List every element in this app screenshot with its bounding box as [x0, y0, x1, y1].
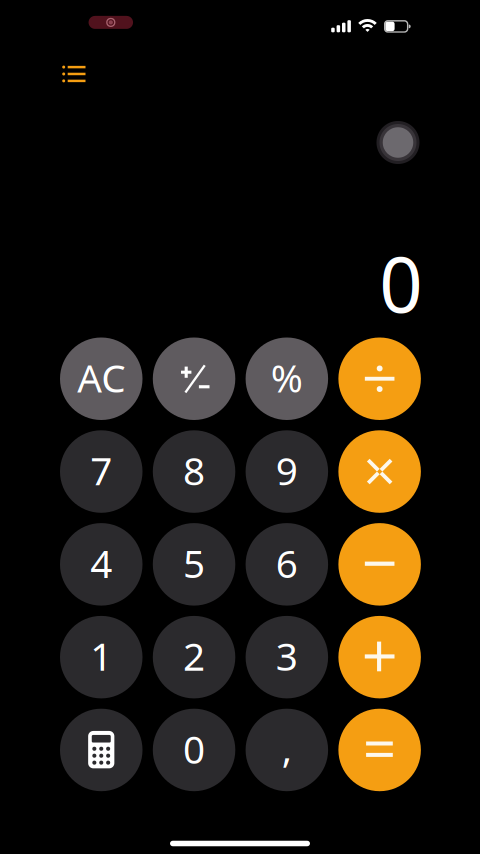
staticText: 0	[183, 723, 205, 774]
button[interactable]: 3	[246, 616, 328, 698]
button[interactable]: Calculator	[60, 709, 142, 791]
staticText: %	[271, 352, 303, 403]
staticText: 6	[276, 537, 298, 589]
staticText: 1	[90, 630, 112, 681]
button[interactable]: 6	[246, 523, 328, 606]
staticText: 8	[183, 445, 205, 496]
staticText: 3	[276, 630, 298, 681]
button[interactable]: Multiply	[338, 430, 421, 513]
staticText: AC	[77, 352, 125, 403]
button[interactable]: Equals	[338, 709, 421, 791]
staticText: 4	[90, 537, 112, 589]
button[interactable]: ,	[246, 709, 328, 791]
button[interactable]: 9	[246, 430, 328, 513]
button[interactable]: Minus	[338, 523, 421, 606]
button[interactable]: History	[52, 52, 96, 96]
button[interactable]: 5	[153, 523, 235, 606]
button[interactable]: AC	[60, 337, 142, 420]
button[interactable]: Divide	[338, 337, 421, 420]
button[interactable]: AssistiveTouch	[376, 120, 420, 164]
button[interactable]: 8	[153, 430, 235, 513]
button[interactable]: %	[246, 337, 328, 420]
staticText: 0	[379, 232, 422, 333]
button[interactable]: Plus	[338, 616, 421, 698]
staticText: ,	[282, 722, 292, 773]
button[interactable]: 7	[60, 430, 142, 513]
button[interactable]: 1	[60, 616, 142, 698]
button[interactable]: 2	[153, 616, 235, 698]
staticText: 9	[276, 445, 298, 496]
button[interactable]: 4	[60, 523, 142, 606]
button[interactable]: Plus minus	[153, 337, 235, 420]
staticText: 5	[183, 537, 205, 589]
staticText: 7	[90, 445, 112, 496]
staticText: 2	[183, 630, 205, 681]
button[interactable]: 0	[153, 709, 235, 791]
